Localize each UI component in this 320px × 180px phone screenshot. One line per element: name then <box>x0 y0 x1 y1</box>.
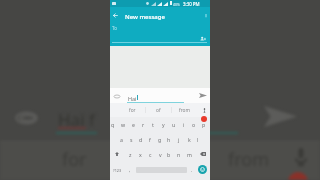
staticText: . <box>191 167 193 173</box>
button[interactable]: y <box>158 118 168 131</box>
button[interactable]: Backspace <box>198 149 208 159</box>
button[interactable]: . <box>187 164 196 176</box>
staticText: o <box>192 121 196 128</box>
staticText: c <box>149 151 152 158</box>
button[interactable]: Attach <box>112 93 122 100</box>
button[interactable]: f <box>145 133 155 146</box>
button[interactable]: Send <box>197 90 208 101</box>
staticText: from <box>179 107 190 114</box>
button[interactable]: b <box>164 148 174 161</box>
staticText: 40% <box>173 2 180 7</box>
staticText: b <box>167 151 171 158</box>
button[interactable]: c <box>145 148 155 161</box>
button[interactable]: x <box>135 148 145 161</box>
button[interactable]: for <box>121 105 143 115</box>
staticText: for <box>129 107 136 114</box>
staticText: h <box>167 136 171 143</box>
staticText: s <box>130 136 133 143</box>
staticText: To <box>112 25 117 31</box>
staticText: e <box>132 121 135 128</box>
staticText: n <box>177 151 181 158</box>
button[interactable]: Shift <box>112 149 122 159</box>
button[interactable]: u <box>169 118 179 131</box>
staticText: z <box>129 151 132 158</box>
staticText: 3:30 PM <box>183 1 200 7</box>
button[interactable]: z <box>125 148 135 161</box>
button[interactable]: t <box>148 118 158 131</box>
staticText: y <box>162 121 165 128</box>
button[interactable]: i <box>179 118 189 131</box>
button[interactable]: w <box>118 118 128 131</box>
staticText: j <box>178 136 180 143</box>
staticText: r <box>142 121 145 128</box>
staticText: d <box>139 136 143 143</box>
staticText: u <box>172 121 176 128</box>
button[interactable]: k <box>184 133 194 146</box>
staticText: l <box>197 136 199 143</box>
staticText: q <box>111 121 115 128</box>
staticText: t <box>152 121 154 128</box>
button[interactable]: a <box>116 133 126 146</box>
button[interactable]: j <box>174 133 184 146</box>
button[interactable]: v <box>155 148 165 161</box>
staticText: of <box>156 107 161 114</box>
button[interactable]: d <box>136 133 146 146</box>
button[interactable]: q <box>108 118 118 131</box>
staticText: i <box>183 121 185 128</box>
button[interactable]: Emoji <box>198 165 207 174</box>
staticText: x <box>139 151 142 158</box>
button[interactable]: h <box>164 133 174 146</box>
button[interactable]: Add contact <box>198 34 207 43</box>
button[interactable]: g <box>155 133 165 146</box>
button[interactable]: o <box>189 118 199 131</box>
staticText: , <box>129 167 131 173</box>
button[interactable]: of <box>147 105 169 115</box>
button[interactable]: , <box>125 164 134 176</box>
staticText: p <box>202 121 206 128</box>
button[interactable]: m <box>184 148 194 161</box>
button[interactable]: l <box>193 133 203 146</box>
staticText: Hai <box>128 95 137 102</box>
button[interactable]: e <box>128 118 138 131</box>
staticText: m <box>187 151 192 158</box>
button[interactable]: r <box>138 118 148 131</box>
button[interactable]: More options <box>201 11 210 20</box>
staticText: v <box>159 151 162 158</box>
button[interactable]: ?123 <box>110 164 124 176</box>
staticText: k <box>188 136 191 143</box>
staticText: g <box>158 136 162 143</box>
staticText: New message <box>125 13 165 21</box>
button[interactable]: from <box>173 105 195 115</box>
staticText: w <box>121 121 126 128</box>
button[interactable]: s <box>126 133 136 146</box>
button[interactable]: Voice input <box>199 105 209 115</box>
staticText: a <box>120 136 123 143</box>
button[interactable]: Back <box>111 11 120 20</box>
button[interactable]: n <box>174 148 184 161</box>
staticText: Hai f <box>58 108 95 131</box>
button[interactable]: p <box>199 118 209 131</box>
staticText: f <box>149 136 151 143</box>
staticText: ?123 <box>113 168 122 173</box>
